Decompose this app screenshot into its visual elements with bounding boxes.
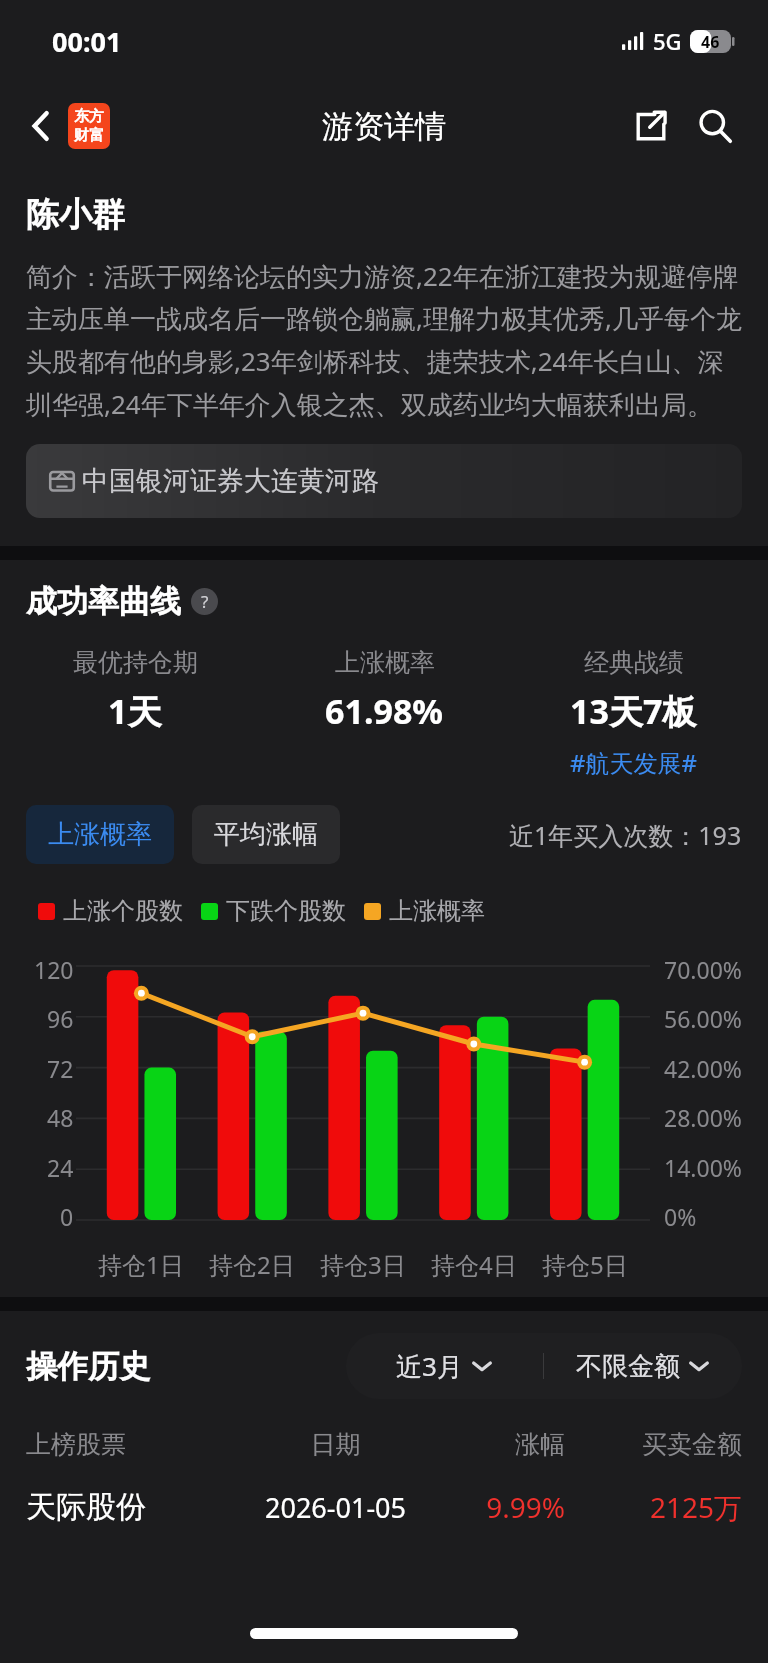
- staticText: 最优持仓期: [73, 647, 198, 678]
- staticText: 持仓5日: [542, 1248, 628, 1281]
- staticText: 28.00%: [664, 1102, 742, 1133]
- staticText: 中国银河证券大连黄河路: [82, 464, 379, 498]
- staticText: 经典战绩: [584, 647, 684, 678]
- staticText: 买卖金额: [565, 1429, 742, 1460]
- staticText: 天际股份: [26, 1488, 247, 1526]
- staticText: ?: [201, 590, 209, 613]
- staticText: 上涨概率: [48, 818, 152, 851]
- staticText: 13天7板: [570, 688, 697, 734]
- staticText: 持仓4日: [431, 1248, 517, 1281]
- staticText: 不限金额: [576, 1350, 680, 1383]
- staticText: 日期: [247, 1429, 424, 1460]
- button[interactable]: 成功率曲线: [26, 582, 218, 621]
- staticText: 上榜股票: [26, 1429, 247, 1460]
- staticText: 0: [60, 1201, 74, 1232]
- button[interactable]: 平均涨幅: [192, 805, 340, 864]
- staticText: 上涨概率: [389, 896, 485, 926]
- staticText: 游资详情: [322, 107, 446, 146]
- button[interactable]: 中国银河证券大连黄河路: [26, 444, 742, 518]
- staticText: 涨幅: [424, 1429, 565, 1460]
- staticText: 14.00%: [664, 1152, 742, 1183]
- staticText: 1天: [108, 688, 162, 734]
- button[interactable]: #航天发展#: [570, 746, 698, 779]
- staticText: 持仓3日: [320, 1248, 406, 1281]
- staticText: 61.98%: [325, 688, 444, 734]
- button[interactable]: Search: [688, 99, 742, 153]
- staticText: 0%: [664, 1201, 697, 1232]
- button[interactable]: East Money logo: [68, 103, 110, 149]
- staticText: 00:01: [52, 23, 122, 60]
- staticText: 42.00%: [664, 1053, 742, 1084]
- staticText: 2125万: [565, 1488, 742, 1526]
- staticText: 下跌个股数: [226, 896, 346, 926]
- staticText: 120: [34, 954, 74, 985]
- staticText: 48: [47, 1102, 74, 1133]
- staticText: 成功率曲线: [26, 582, 181, 621]
- staticText: 上涨个股数: [63, 896, 183, 926]
- staticText: 近3月: [396, 1348, 463, 1384]
- staticText: 46: [701, 31, 720, 53]
- staticText: 简介：活跃于网络论坛的实力游资,22年在浙江建投为规避停牌主动压单一战成名后一路…: [26, 258, 742, 422]
- button[interactable]: 不限金额: [544, 1333, 742, 1399]
- staticText: 96: [47, 1003, 74, 1034]
- button[interactable]: 陈小群: [26, 194, 125, 236]
- button[interactable]: 天际股份: [26, 1488, 742, 1526]
- staticText: 平均涨幅: [214, 818, 318, 851]
- staticText: 70.00%: [664, 954, 742, 985]
- staticText: 56.00%: [664, 1003, 742, 1034]
- button[interactable]: Share: [624, 99, 678, 153]
- staticText: 持仓1日: [98, 1248, 184, 1281]
- staticText: 5G: [653, 26, 682, 56]
- staticText: 持仓2日: [209, 1248, 295, 1281]
- button[interactable]: 上涨概率: [26, 805, 174, 864]
- staticText: 财富: [74, 126, 104, 145]
- staticText: 近1年买入次数：193: [509, 818, 742, 852]
- staticText: 2026-01-05: [247, 1489, 424, 1526]
- staticText: 操作历史: [26, 1347, 150, 1386]
- staticText: 24: [47, 1152, 74, 1183]
- button[interactable]: Back: [18, 103, 64, 149]
- staticText: 72: [47, 1053, 74, 1084]
- staticText: 9.99%: [424, 1488, 565, 1526]
- staticText: 东方: [74, 107, 104, 126]
- button[interactable]: 近3月: [346, 1333, 543, 1399]
- staticText: 上涨概率: [335, 647, 435, 678]
